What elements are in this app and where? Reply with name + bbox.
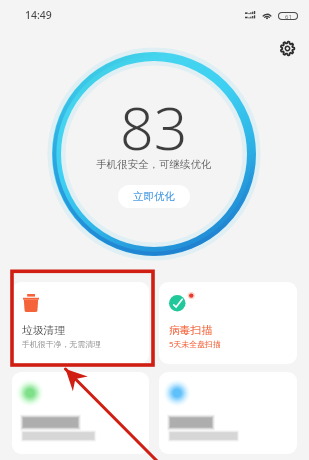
staticText: 14:49 (25, 8, 52, 22)
staticText: 立即优化 (133, 190, 175, 203)
button[interactable]: 立即优化 (118, 185, 190, 208)
staticText: 手机很安全，可继续优化 (96, 158, 212, 171)
button[interactable] (12, 372, 149, 454)
staticText: 83 (120, 87, 188, 151)
button[interactable]: 垃圾清理 (12, 282, 149, 364)
button[interactable] (159, 372, 297, 454)
staticText: 病毒扫描 (169, 324, 213, 338)
staticText: 垃圾清理 (22, 324, 66, 338)
button[interactable]: 病毒扫描 (159, 282, 297, 364)
button[interactable]: Settings (274, 35, 300, 61)
staticText: 5天未全盘扫描 (169, 339, 221, 350)
staticText: 手机很干净，无需清理 (22, 339, 101, 349)
staticText: 61 (285, 13, 292, 19)
